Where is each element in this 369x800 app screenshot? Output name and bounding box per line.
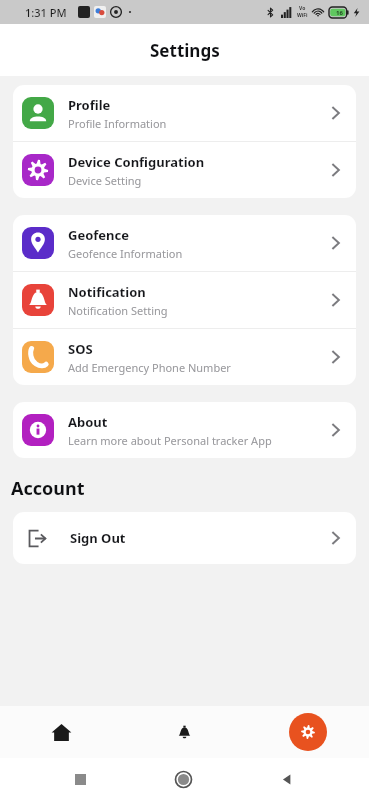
staticText: About: [68, 413, 108, 431]
staticText: Device Setting: [68, 173, 142, 188]
staticText: Sign Out: [70, 529, 327, 547]
button[interactable]: Home: [0, 706, 123, 758]
button[interactable]: About: [13, 402, 356, 458]
button[interactable]: Notification: [13, 272, 356, 328]
staticText: Profile: [68, 96, 111, 114]
staticText: 1:31 PM: [25, 5, 67, 20]
staticText: SOS: [68, 340, 93, 358]
staticText: WiFi: [297, 12, 308, 19]
button[interactable]: Notifications: [123, 706, 246, 758]
button[interactable]: Sign Out: [13, 512, 356, 564]
staticText: Account: [11, 476, 85, 501]
staticText: Add Emergency Phone Number: [68, 360, 231, 375]
staticText: Geofence: [68, 226, 130, 244]
staticText: Learn more about Personal tracker App: [68, 433, 272, 448]
button[interactable]: Device Configuration: [13, 142, 356, 198]
button[interactable]: SOS: [13, 329, 356, 385]
staticText: Vo: [299, 5, 306, 12]
button[interactable]: Settings: [246, 706, 369, 758]
staticText: Profile Information: [68, 116, 167, 131]
staticText: Settings: [150, 39, 220, 62]
button[interactable]: Geofence: [13, 215, 356, 271]
staticText: 16: [336, 9, 343, 17]
staticText: Notification Setting: [68, 303, 168, 318]
staticText: Notification: [68, 283, 146, 301]
staticText: Device Configuration: [68, 153, 205, 171]
staticText: Geofence Information: [68, 246, 183, 261]
button[interactable]: Profile: [13, 85, 356, 141]
